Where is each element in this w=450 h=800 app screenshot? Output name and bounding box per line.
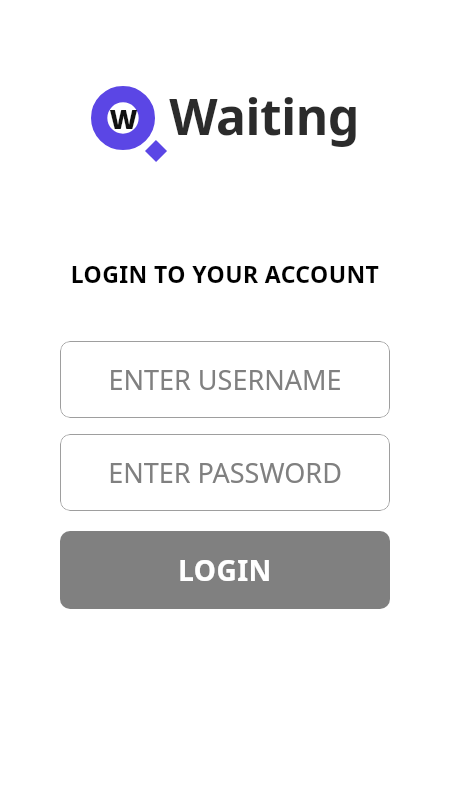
button[interactable]: LOGIN	[60, 531, 390, 609]
staticText: ENTER PASSWORD	[108, 454, 342, 491]
staticText: Waiting	[169, 82, 359, 150]
staticText: ENTER USERNAME	[108, 361, 342, 398]
button[interactable]: ENTER USERNAME	[60, 341, 390, 418]
button[interactable]: ENTER PASSWORD	[60, 434, 390, 511]
staticText: LOGIN TO YOUR ACCOUNT	[0, 258, 450, 289]
staticText: W	[109, 100, 138, 137]
staticText: LOGIN	[178, 551, 272, 589]
